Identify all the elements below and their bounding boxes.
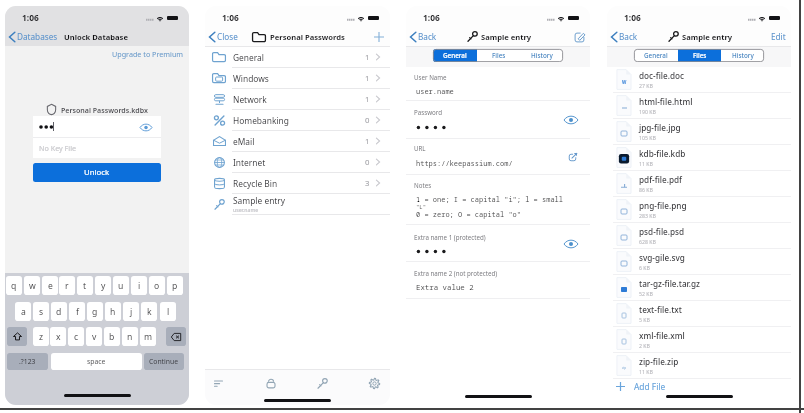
- button[interactable]: o: [149, 276, 165, 295]
- button[interactable]: .?123: [7, 353, 48, 370]
- button[interactable]: tar-gz-file.tar.gz: [607, 275, 791, 301]
- button[interactable]: Recycle Bin: [205, 173, 390, 194]
- button[interactable]: Settings: [363, 372, 385, 394]
- button[interactable]: w: [24, 276, 40, 295]
- button[interactable]: Extra name 2 (not protected): [406, 262, 590, 299]
- button[interactable]: r: [59, 276, 75, 295]
- staticText: 0: [365, 157, 370, 168]
- button[interactable]: Back: [410, 31, 437, 42]
- button[interactable]: General: [205, 47, 390, 68]
- button[interactable]: History: [520, 49, 563, 62]
- button[interactable]: Extra name 1 (protected): [406, 225, 590, 262]
- button[interactable]: Homebanking: [205, 110, 390, 131]
- button[interactable]: Locked: [260, 372, 282, 394]
- button[interactable]: p: [167, 276, 183, 295]
- button[interactable]: j: [123, 302, 139, 321]
- staticText: Unlock Database: [64, 32, 128, 42]
- button[interactable]: kdb-file.kdb: [607, 145, 791, 171]
- button[interactable]: eMail: [205, 131, 390, 152]
- button[interactable]: q: [6, 276, 22, 295]
- staticText: n: [127, 331, 133, 343]
- button[interactable]: i: [131, 276, 147, 295]
- button[interactable]: psd-file.psd: [607, 223, 791, 249]
- button[interactable]: Delete: [166, 327, 186, 346]
- button[interactable]: l: [160, 302, 176, 321]
- button[interactable]: y: [95, 276, 111, 295]
- staticText: Add File: [634, 381, 666, 392]
- button[interactable]: d: [51, 302, 67, 321]
- button[interactable]: xml-file.xml: [607, 327, 791, 353]
- button[interactable]: Close: [209, 31, 238, 42]
- staticText: png-file.png: [639, 200, 687, 211]
- staticText: d: [56, 306, 62, 318]
- button[interactable]: n: [122, 327, 138, 346]
- staticText: i: [138, 280, 141, 292]
- button[interactable]: s: [33, 302, 49, 321]
- button[interactable]: x: [50, 327, 66, 346]
- button[interactable]: Sample entry: [205, 194, 390, 215]
- button[interactable]: f: [69, 302, 85, 321]
- button[interactable]: Add: [372, 30, 385, 43]
- button[interactable]: Open link: [566, 151, 578, 163]
- button[interactable]: Windows: [205, 68, 390, 89]
- staticText: c: [74, 331, 79, 343]
- button[interactable]: Internet: [205, 152, 390, 173]
- button[interactable]: History: [721, 49, 764, 62]
- button[interactable]: Upgrade to Premium: [112, 49, 184, 59]
- button[interactable]: e: [42, 276, 58, 295]
- button[interactable]: Unlock: [33, 163, 161, 182]
- button[interactable]: Add File: [614, 379, 791, 393]
- button[interactable]: URL: [406, 139, 590, 175]
- button[interactable]: Back: [611, 31, 638, 42]
- button[interactable]: html-file.html: [607, 93, 791, 119]
- button[interactable]: m: [140, 327, 156, 346]
- staticText: General: [644, 51, 668, 60]
- button[interactable]: v: [86, 327, 102, 346]
- button[interactable]: Files: [477, 49, 520, 62]
- button[interactable]: zip: [607, 353, 791, 379]
- staticText: Sample entry: [233, 195, 286, 206]
- button[interactable]: pdf-file.pdf: [607, 171, 791, 197]
- button[interactable]: Notes: [406, 175, 590, 225]
- button[interactable]: Shift: [7, 327, 27, 346]
- staticText: History: [732, 51, 754, 60]
- button[interactable]: Databases: [9, 31, 58, 42]
- button[interactable]: k: [141, 302, 157, 321]
- staticText: "L": [416, 203, 427, 211]
- button[interactable]: General: [634, 49, 678, 62]
- staticText: Personal Passwords: [270, 32, 345, 42]
- button[interactable]: Show value: [564, 237, 578, 251]
- staticText: Recycle Bin: [233, 178, 278, 189]
- button[interactable]: Show password: [140, 121, 152, 133]
- button[interactable]: W: [607, 67, 791, 93]
- button[interactable]: Groups: [207, 372, 229, 394]
- button[interactable]: Edit: [573, 31, 585, 43]
- button[interactable]: g: [87, 302, 103, 321]
- button[interactable]: a: [15, 302, 31, 321]
- button[interactable]: u: [113, 276, 129, 295]
- button[interactable]: b: [104, 327, 120, 346]
- button[interactable]: z: [33, 327, 49, 346]
- button[interactable]: Edit: [771, 31, 786, 42]
- staticText: 1:06: [222, 12, 239, 23]
- button[interactable]: Continue: [144, 353, 184, 370]
- button[interactable]: General: [433, 49, 477, 62]
- button[interactable]: Network: [205, 89, 390, 110]
- staticText: zip-file.zip: [639, 356, 679, 367]
- staticText: tar-gz-file.tar.gz: [639, 278, 700, 289]
- button[interactable]: Password: [406, 101, 590, 139]
- button[interactable]: User Name: [406, 67, 590, 101]
- button[interactable]: png-file.png: [607, 197, 791, 223]
- button[interactable]: Keys: [311, 372, 333, 394]
- button[interactable]: Files: [678, 49, 721, 62]
- button[interactable]: text-file.txt: [607, 301, 791, 327]
- button[interactable]: Show value: [564, 113, 578, 127]
- staticText: 2 KB: [639, 342, 650, 349]
- staticText: Sample entry: [481, 32, 532, 42]
- button[interactable]: jpg-file.jpg: [607, 119, 791, 145]
- button[interactable]: c: [68, 327, 84, 346]
- button[interactable]: space: [51, 353, 142, 370]
- button[interactable]: t: [77, 276, 93, 295]
- button[interactable]: h: [105, 302, 121, 321]
- button[interactable]: svg-gile.svg: [607, 249, 791, 275]
